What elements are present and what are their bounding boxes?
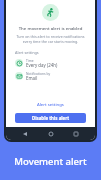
- staticText: Movement alert: [14, 155, 87, 168]
- button[interactable]: Disable this alert: [15, 113, 86, 123]
- staticText: Alert settings: [37, 102, 64, 108]
- button[interactable]: Recent apps: [70, 128, 82, 140]
- staticText: Time: [26, 58, 34, 62]
- staticText: Every day (24h): [26, 62, 58, 68]
- button[interactable]: Alert settings: [34, 101, 67, 109]
- staticText: Alert settings: [15, 50, 39, 55]
- staticText: Notifications by: [26, 71, 51, 75]
- button[interactable]: Home: [45, 128, 57, 140]
- button[interactable]: Notifications by: [15, 71, 86, 81]
- staticText: Email: [26, 75, 38, 81]
- staticText: Disable this alert: [32, 115, 70, 121]
- button[interactable]: Time: [15, 58, 86, 68]
- button[interactable]: Back: [19, 128, 31, 140]
- staticText: Turn on this alert to receive notificati…: [15, 34, 86, 44]
- staticText: The movement alert is enabled: [15, 25, 86, 31]
